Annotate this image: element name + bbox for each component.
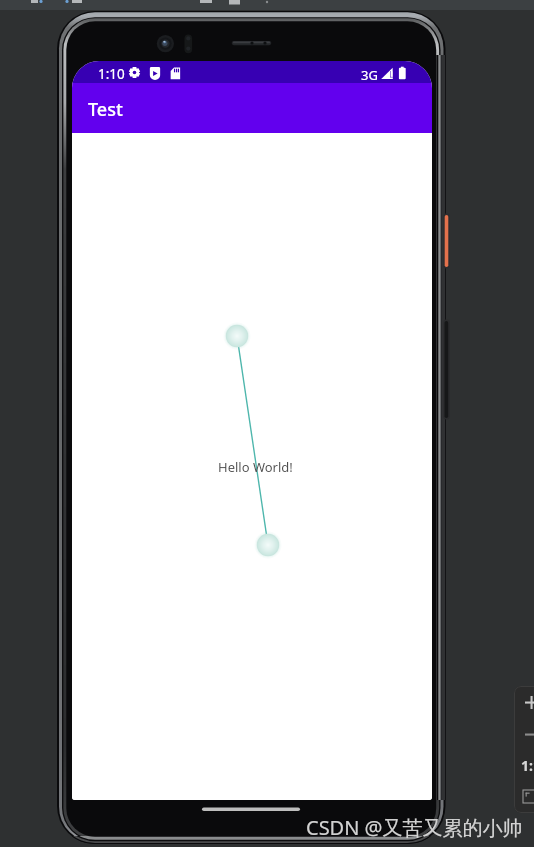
staticText: 1:1 bbox=[521, 756, 534, 775]
staticText: 1:10 bbox=[98, 65, 125, 83]
button[interactable]: Zoom in bbox=[514, 686, 534, 719]
button[interactable]: Fit to screen bbox=[514, 780, 534, 813]
staticText: Hello World! bbox=[218, 458, 293, 476]
staticText: Test bbox=[88, 97, 123, 122]
button[interactable]: Test bbox=[72, 83, 432, 133]
button[interactable]: 1:1 bbox=[514, 750, 534, 780]
staticText: CSDN @又苦又累的小帅 bbox=[306, 814, 523, 841]
staticText: 3G bbox=[361, 66, 378, 84]
button[interactable]: Zoom out bbox=[514, 719, 534, 750]
